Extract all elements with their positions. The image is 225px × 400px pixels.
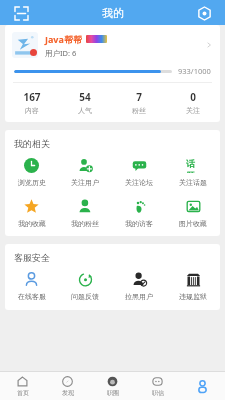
- staticText: 933/1000: [178, 66, 211, 76]
- button[interactable]: 职圈: [90, 372, 135, 400]
- button[interactable]: 职信: [135, 372, 180, 400]
- button[interactable]: 在线客服: [5, 272, 58, 301]
- staticText: 首页: [17, 389, 29, 397]
- staticText: 用户ID: 6: [45, 48, 77, 58]
- staticText: 关注: [186, 106, 200, 115]
- button[interactable]: 浏览历史: [5, 158, 58, 187]
- staticText: 我的收藏: [18, 219, 46, 228]
- button[interactable]: 问题反馈: [58, 272, 112, 301]
- button[interactable]: 0: [166, 90, 220, 115]
- button[interactable]: 图片收藏: [166, 199, 220, 228]
- button[interactable]: 拉黑用户: [112, 272, 166, 301]
- staticText: 167: [23, 90, 41, 104]
- button[interactable]: 我的: [180, 372, 225, 400]
- staticText: 我的访客: [125, 219, 153, 228]
- button[interactable]: 发现: [45, 372, 90, 400]
- button[interactable]: 167: [5, 90, 58, 115]
- staticText: 关注用户: [71, 178, 99, 187]
- button[interactable]: 我的访客: [112, 199, 166, 228]
- button[interactable]: 首页: [0, 372, 45, 400]
- staticText: 客服安全: [14, 252, 50, 263]
- staticText: 我的粉丝: [71, 219, 99, 228]
- staticText: 7: [136, 90, 142, 104]
- button[interactable]: 我的粉丝: [58, 199, 112, 228]
- staticText: 发现: [62, 389, 74, 397]
- button[interactable]: 关注论坛: [112, 158, 166, 187]
- staticText: 问题反馈: [71, 292, 99, 301]
- button[interactable]: 话题: [166, 158, 220, 187]
- staticText: 0: [190, 90, 196, 104]
- button[interactable]: 关注用户: [58, 158, 112, 187]
- staticText: 我的相关: [14, 138, 50, 149]
- staticText: 54: [79, 90, 91, 104]
- button[interactable]: 违规监狱: [166, 272, 220, 301]
- button[interactable]: Java帮帮: [5, 25, 220, 65]
- staticText: 关注论坛: [125, 178, 153, 187]
- staticText: 我的: [102, 6, 124, 20]
- staticText: 人气: [78, 106, 92, 115]
- button[interactable]: Settings: [193, 2, 215, 24]
- button[interactable]: 我的收藏: [5, 199, 58, 228]
- button[interactable]: 54: [58, 90, 112, 115]
- staticText: 职圈: [107, 389, 119, 397]
- staticText: Java帮帮: [45, 33, 82, 45]
- button[interactable]: Scan QR code: [10, 2, 32, 24]
- staticText: 话题: [186, 158, 201, 173]
- staticText: 图片收藏: [179, 219, 207, 228]
- staticText: 拉黑用户: [125, 292, 153, 301]
- staticText: 违规监狱: [179, 292, 207, 301]
- staticText: 内容: [25, 106, 39, 115]
- staticText: 在线客服: [18, 292, 46, 301]
- staticText: 关注话题: [179, 178, 207, 187]
- staticText: 粉丝: [132, 106, 146, 115]
- staticText: 职信: [152, 389, 164, 397]
- staticText: 浏览历史: [18, 178, 46, 187]
- button[interactable]: 7: [112, 90, 166, 115]
